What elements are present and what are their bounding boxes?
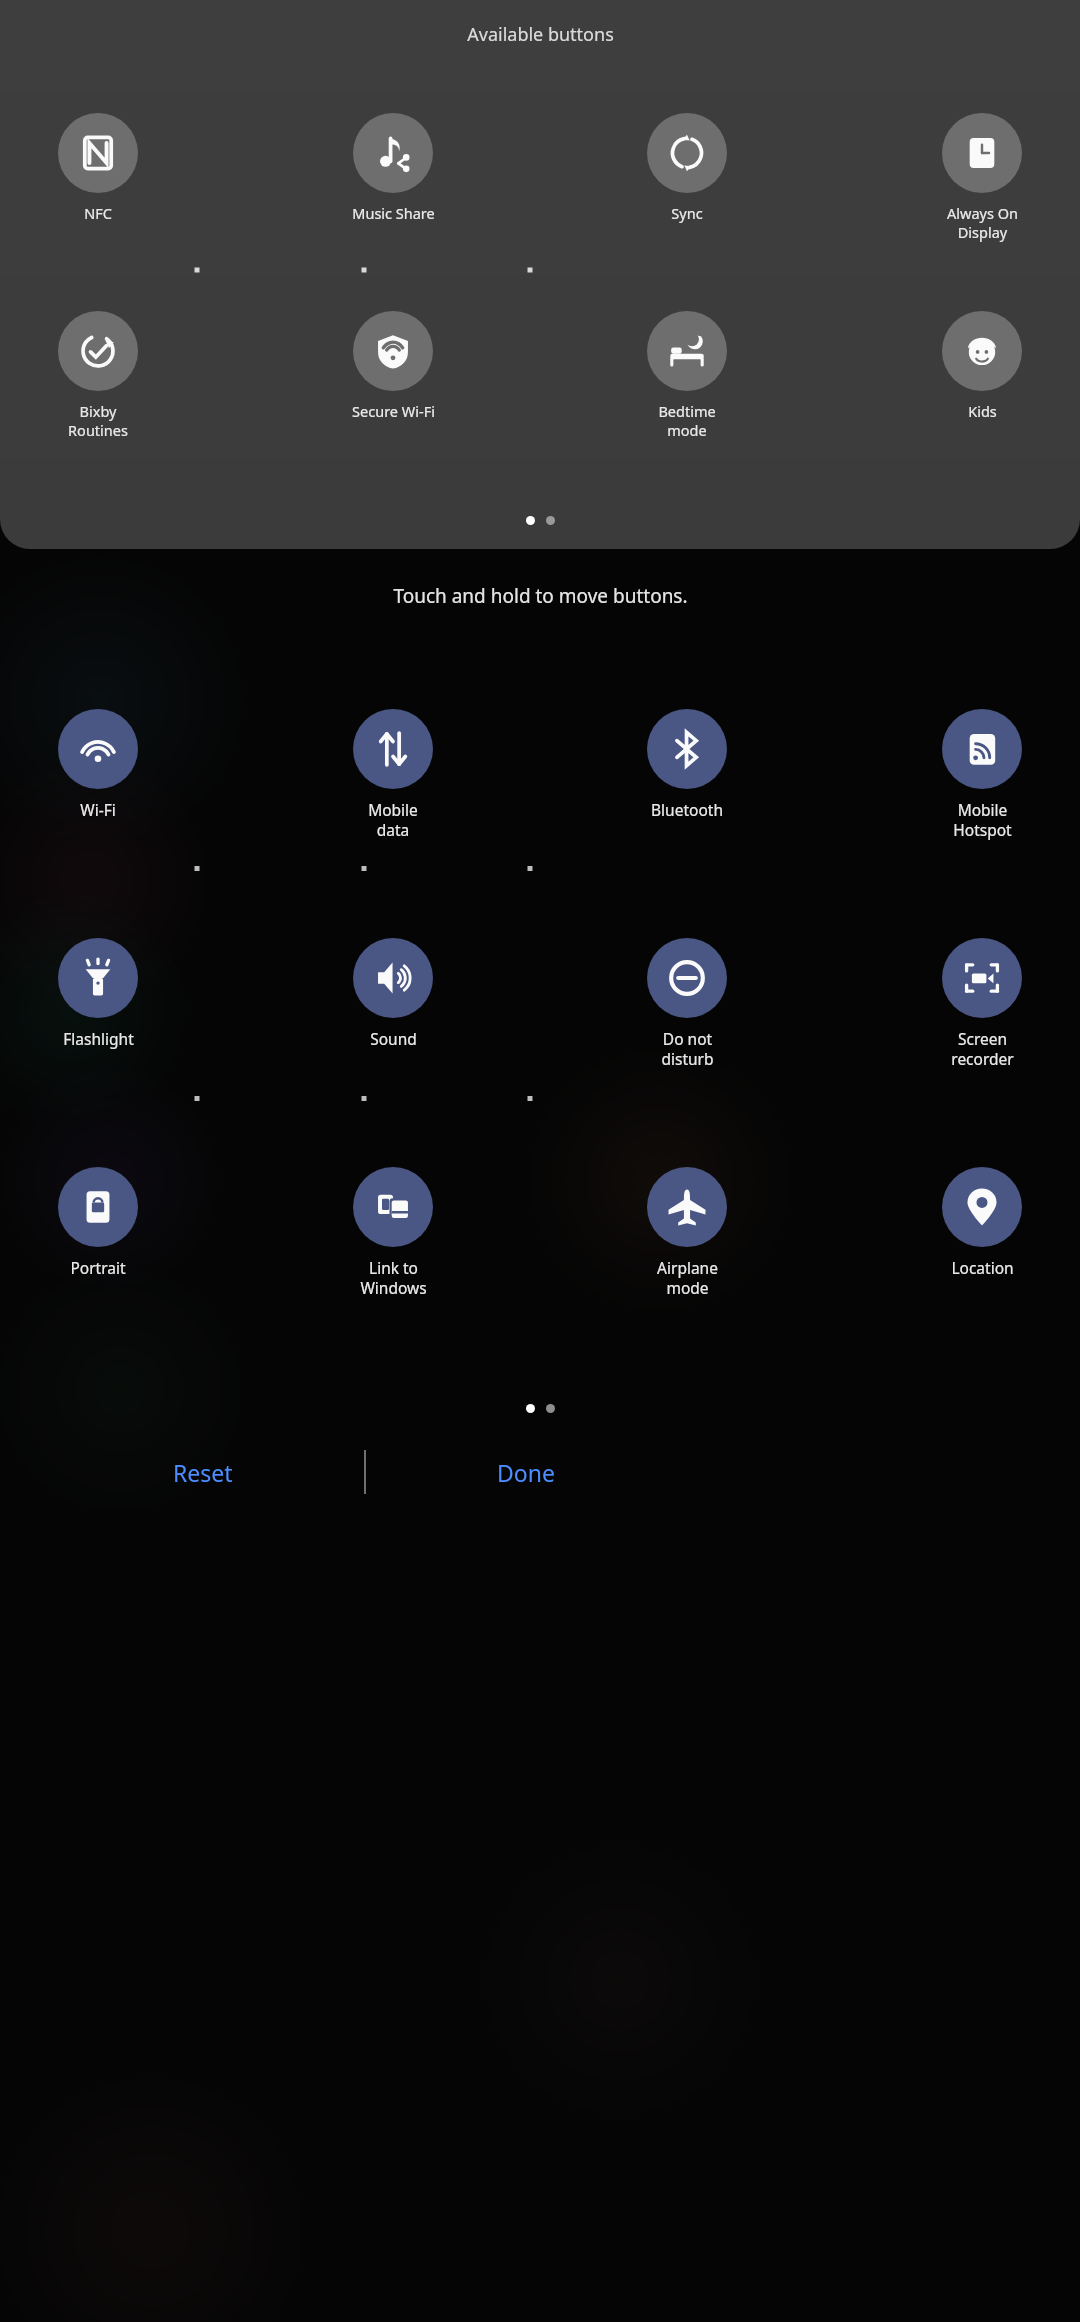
other: Flashlight bbox=[58, 938, 138, 1018]
button[interactable]: Mobile Hotspot bbox=[908, 709, 1056, 841]
button[interactable]: Done bbox=[383, 1434, 669, 1510]
staticText: Screen recorder bbox=[951, 1028, 1014, 1070]
staticText: Sound bbox=[370, 1028, 417, 1049]
staticText: Airplane mode bbox=[657, 1257, 718, 1299]
button[interactable]: Bluetooth bbox=[613, 709, 761, 820]
button[interactable]: Reset bbox=[60, 1434, 346, 1510]
staticText: Location bbox=[951, 1257, 1014, 1278]
staticText: Mobile Hotspot bbox=[953, 799, 1012, 841]
other: Link to Windows bbox=[353, 1167, 433, 1247]
button[interactable]: NFC bbox=[24, 113, 172, 223]
button[interactable]: Sync bbox=[613, 113, 761, 223]
staticText: NFC bbox=[84, 203, 112, 223]
button[interactable]: Flashlight bbox=[24, 938, 172, 1049]
other: Mobile Hotspot bbox=[942, 709, 1022, 789]
other: Kids bbox=[942, 311, 1022, 391]
staticText: Kids bbox=[968, 401, 997, 421]
button[interactable]: Portrait bbox=[24, 1167, 172, 1278]
staticText: Do not disturb bbox=[661, 1028, 714, 1070]
other: NFC bbox=[58, 113, 138, 193]
staticText: Bixby Routines bbox=[68, 401, 128, 441]
staticText: Wi-Fi bbox=[80, 799, 116, 820]
staticText: Link to Windows bbox=[360, 1257, 427, 1299]
button[interactable]: Sound bbox=[319, 938, 467, 1049]
button[interactable]: Bixby Routines bbox=[24, 311, 172, 441]
staticText: Mobile data bbox=[368, 799, 418, 841]
staticText: Secure Wi-Fi bbox=[352, 401, 435, 421]
staticText: Music Share bbox=[352, 203, 435, 223]
button[interactable]: Airplane mode bbox=[613, 1167, 761, 1299]
staticText: Done bbox=[497, 1457, 555, 1488]
button[interactable]: Wi-Fi bbox=[24, 709, 172, 820]
other: Screen recorder bbox=[942, 938, 1022, 1018]
button[interactable]: Always On Display bbox=[908, 113, 1056, 243]
button[interactable]: Mobile data bbox=[319, 709, 467, 841]
staticText: Bedtime mode bbox=[658, 401, 716, 441]
button[interactable]: Link to Windows bbox=[319, 1167, 467, 1299]
button[interactable]: Kids bbox=[908, 311, 1056, 421]
other: Music Share bbox=[353, 113, 433, 193]
other: Portrait bbox=[58, 1167, 138, 1247]
other: Location bbox=[942, 1167, 1022, 1247]
staticText: Always On Display bbox=[947, 203, 1018, 243]
other: Do not disturb bbox=[647, 938, 727, 1018]
staticText: Reset bbox=[173, 1457, 233, 1488]
other: Bedtime mode bbox=[647, 311, 727, 391]
other: Bixby Routines bbox=[58, 311, 138, 391]
other: Airplane mode bbox=[647, 1167, 727, 1247]
staticText: Flashlight bbox=[63, 1028, 134, 1049]
staticText: Available buttons bbox=[467, 22, 614, 47]
button[interactable]: Do not disturb bbox=[613, 938, 761, 1070]
other: Wi-Fi bbox=[58, 709, 138, 789]
other: Mobile data bbox=[353, 709, 433, 789]
other: Secure Wi-Fi bbox=[353, 311, 433, 391]
other: Sound bbox=[353, 938, 433, 1018]
button[interactable]: Location bbox=[908, 1167, 1056, 1278]
button[interactable]: Music Share bbox=[319, 113, 467, 223]
other: Always On Display bbox=[942, 113, 1022, 193]
button[interactable]: Screen recorder bbox=[908, 938, 1056, 1070]
button[interactable]: Secure Wi-Fi bbox=[319, 311, 467, 421]
staticText: Touch and hold to move buttons. bbox=[393, 583, 688, 609]
other: Sync bbox=[647, 113, 727, 193]
button[interactable]: Bedtime mode bbox=[613, 311, 761, 441]
staticText: Portrait bbox=[70, 1257, 126, 1278]
other: Bluetooth bbox=[647, 709, 727, 789]
staticText: Sync bbox=[671, 203, 703, 223]
staticText: Bluetooth bbox=[651, 799, 723, 820]
